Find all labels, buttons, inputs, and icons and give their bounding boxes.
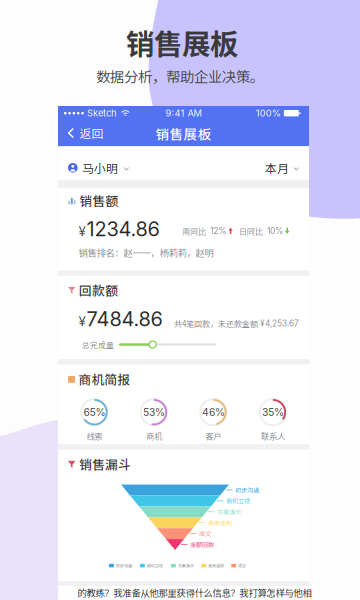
staticText: 销售排名：赵一一，杨莉莉，赵明 (78, 246, 213, 259)
staticText: 65% (83, 406, 105, 418)
staticText: 商务谈判 (208, 562, 224, 569)
staticText: 共4笔回款，未还款金额 (174, 318, 258, 329)
staticText: 9:41 AM (165, 108, 201, 119)
staticText: 销售展板 (126, 21, 238, 62)
staticText: 商务谈判 (208, 518, 232, 527)
staticText: 本月 (265, 159, 289, 176)
staticText: 1234.86 (86, 217, 159, 241)
staticText: 销售漏斗 (79, 455, 131, 473)
staticText: 35% (262, 406, 284, 418)
staticText: 方案演示 (217, 507, 241, 516)
staticText: 联系人 (261, 430, 285, 442)
staticText: 商机立项 (226, 496, 250, 505)
staticText: 100% (256, 108, 281, 119)
staticText: Sketch (87, 108, 117, 119)
staticText: 商机立项 (147, 562, 163, 569)
button[interactable]: 本月 (259, 154, 309, 181)
staticText: 商机 (146, 430, 162, 442)
staticText: 金额回款 (190, 540, 214, 549)
staticText: 回款额 (79, 281, 118, 299)
staticText: ¥ (78, 223, 85, 239)
button[interactable]: 马小明 (58, 154, 135, 181)
staticText: 日同比 (233, 225, 263, 237)
staticText: 初步沟通 (235, 485, 259, 494)
staticText: ¥ (78, 313, 85, 329)
staticText: 返回 (79, 124, 103, 141)
staticText: 马小明 (82, 159, 118, 176)
staticText: 成交 (238, 562, 246, 569)
staticText: ¥4,253.67 (258, 318, 299, 328)
staticText: 10% (263, 226, 283, 236)
staticText: 周同比 (182, 225, 206, 237)
staticText: 方案演示 (178, 562, 194, 569)
staticText: 46% (202, 406, 225, 418)
staticText: 成交 (199, 529, 211, 538)
staticText: 的教练？我准备从他那里获得什么信息？我打算怎样与他相 (78, 586, 312, 599)
staticText: 销售额 (79, 191, 118, 210)
staticText: 销售展板 (155, 124, 211, 143)
staticText: 53% (143, 406, 165, 418)
staticText: 总完成量 (82, 339, 114, 350)
staticText: 商机简报 (79, 370, 131, 388)
staticText: 初步沟通 (116, 562, 132, 569)
button[interactable]: 返回 (58, 119, 109, 146)
staticText: 数据分析，帮助企业决策。 (96, 66, 264, 86)
staticText: 7484.86 (86, 307, 162, 331)
staticText: 12% (206, 226, 226, 236)
staticText: 线索 (86, 430, 102, 442)
staticText: 客户 (205, 430, 221, 442)
